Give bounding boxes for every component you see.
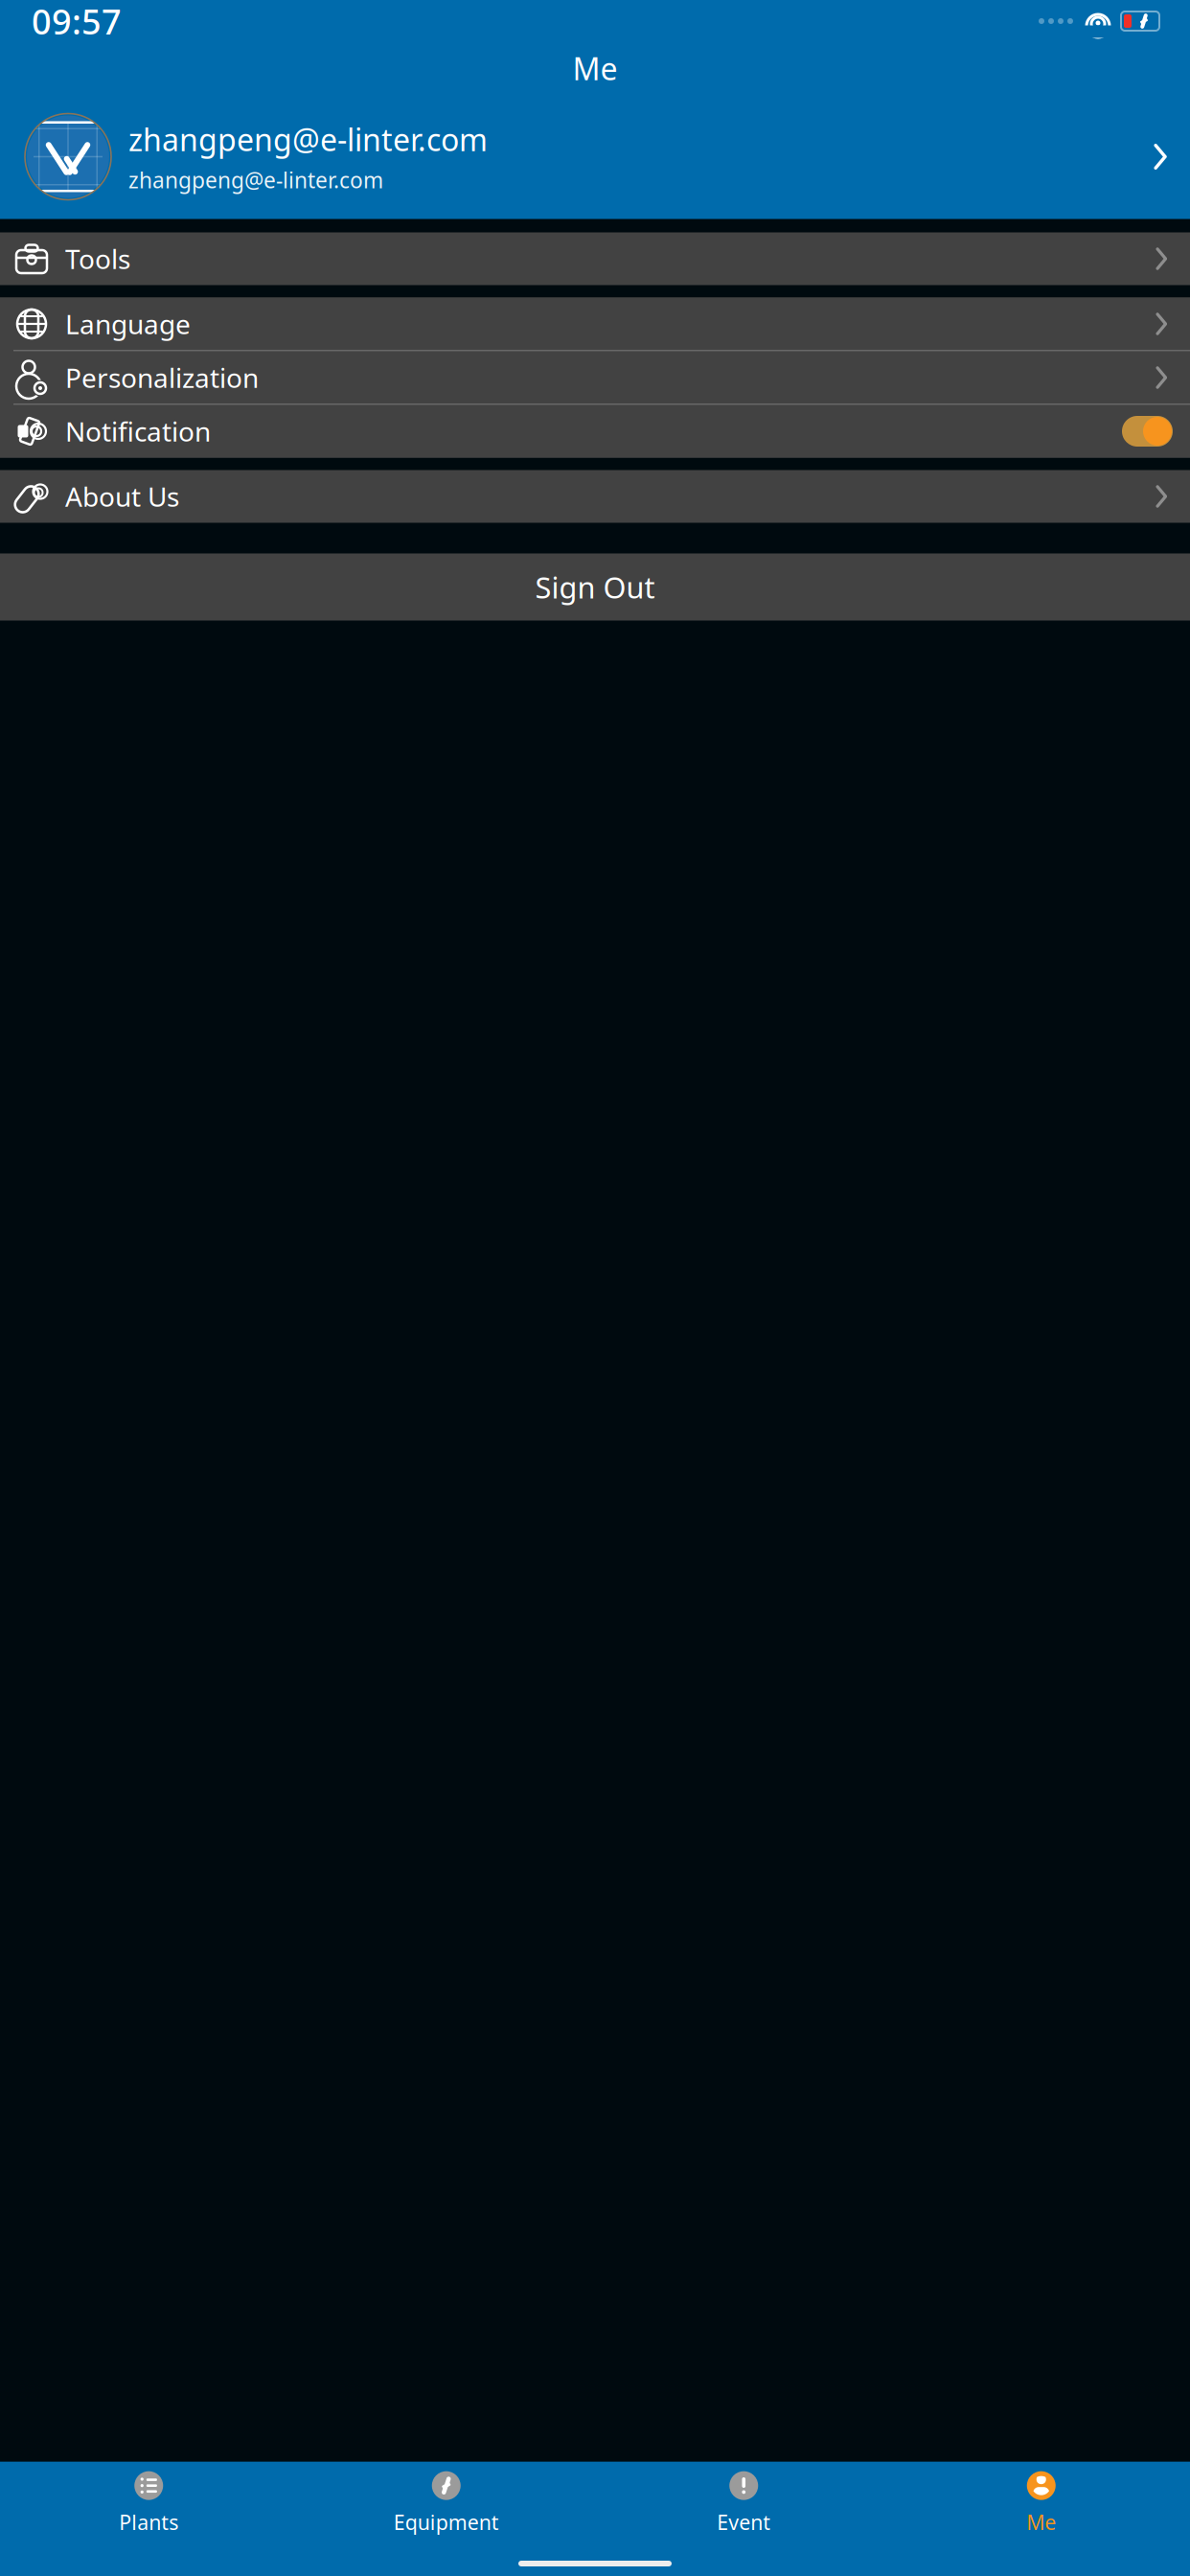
staticText: Sign Out: [535, 567, 655, 606]
button[interactable]: Equipment: [297, 2462, 595, 2543]
staticText: Plants: [119, 2509, 178, 2536]
staticText: Notification: [65, 413, 211, 449]
button[interactable]: Notification: [0, 405, 1190, 458]
button[interactable]: Tools: [0, 232, 1190, 285]
button[interactable]: zhangpeng@e-linter.com: [0, 98, 1190, 215]
button[interactable]: Event: [595, 2462, 892, 2543]
staticText: zhangpeng@e-linter.com: [128, 119, 488, 160]
staticText: About Us: [65, 479, 179, 514]
button[interactable]: Sign Out: [0, 553, 1190, 621]
staticText: Event: [717, 2509, 771, 2536]
button[interactable]: Language: [0, 298, 1190, 350]
button[interactable]: Me: [892, 2462, 1190, 2543]
staticText: zhangpeng@e-linter.com: [128, 166, 383, 194]
staticText: Me: [572, 48, 618, 89]
button[interactable]: Notification: [1122, 416, 1173, 447]
staticText: Tools: [65, 241, 130, 277]
staticText: Language: [65, 306, 191, 342]
staticText: Equipment: [394, 2509, 499, 2536]
button[interactable]: About Us: [0, 470, 1190, 523]
button[interactable]: Plants: [0, 2462, 297, 2543]
staticText: Me: [1026, 2509, 1056, 2536]
button[interactable]: Personalization: [0, 351, 1190, 404]
staticText: 09:57: [32, 0, 122, 44]
staticText: Personalization: [65, 360, 259, 395]
